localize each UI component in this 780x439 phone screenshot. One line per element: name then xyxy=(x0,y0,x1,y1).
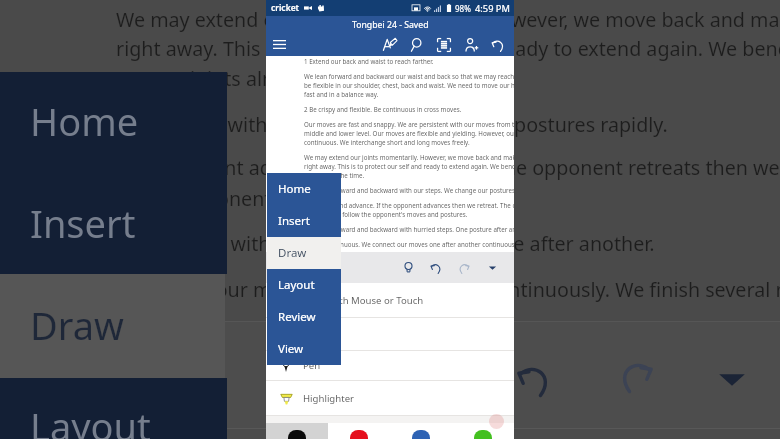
button[interactable]: Redo xyxy=(454,252,474,283)
staticText: We may extend our joints momentarily. Ho… xyxy=(116,6,780,33)
staticText: 1 Extend our back and waist to reach far… xyxy=(304,57,434,65)
staticText: cricket xyxy=(271,2,300,14)
staticText: advance. We follow the opponent's moves … xyxy=(0,185,483,212)
button[interactable]: Home xyxy=(267,173,341,205)
staticText: We lean forward and backward our waist a… xyxy=(304,72,514,80)
staticText: Our moves are fast and snappy. We are pe… xyxy=(304,120,514,128)
button[interactable]: Undo xyxy=(426,252,446,283)
staticText: Home xyxy=(278,181,311,197)
staticText: Draw xyxy=(278,245,307,261)
staticText: Insert xyxy=(278,213,310,229)
button[interactable]: View xyxy=(267,333,341,365)
staticText: 4:59 PM xyxy=(475,2,510,15)
staticText: We move forward and backward with our st… xyxy=(304,186,514,194)
button[interactable]: Share xyxy=(457,33,484,56)
staticText: We are continuous. We connect our moves … xyxy=(304,240,514,248)
staticText: We may extend our joints momentarily. Ho… xyxy=(304,153,514,161)
staticText: Home xyxy=(30,95,139,147)
staticText: 2 Be crispy and flexible. Be continuous … xyxy=(304,105,462,113)
staticText: We move forward and backward with our st… xyxy=(0,111,668,138)
staticText: right away. This is to protect our self … xyxy=(116,35,780,62)
button[interactable]: Search xyxy=(403,33,430,56)
button[interactable]: Green xyxy=(452,423,514,439)
staticText: Highlighter xyxy=(303,392,355,405)
staticText: Pen xyxy=(303,359,321,372)
staticText: Layout xyxy=(278,277,315,293)
button[interactable]: Pen xyxy=(266,351,514,380)
button[interactable]: Draw with Mouse or Touch xyxy=(266,283,514,317)
staticText: We retreat and advance. If the opponent … xyxy=(304,201,514,209)
button[interactable]: Red xyxy=(328,423,390,439)
staticText: joints almost all the time. xyxy=(190,65,423,92)
button[interactable]: Menu xyxy=(266,33,292,56)
button[interactable]: Layout view xyxy=(430,33,457,56)
button[interactable]: Insert xyxy=(267,205,341,237)
staticText: Layout xyxy=(30,400,151,439)
staticText: continuous. We interchange short and lon… xyxy=(304,138,470,146)
staticText: We are continuous. We connect our moves … xyxy=(0,276,780,303)
staticText: Draw xyxy=(30,299,124,351)
staticText: Draw with Mouse or Touch xyxy=(303,294,424,307)
staticText: Review xyxy=(278,309,316,325)
button[interactable]: More options xyxy=(482,252,502,283)
staticText: advance. We follow the opponent's moves … xyxy=(304,210,468,218)
staticText: View xyxy=(278,341,304,357)
staticText: We move forward and backward with hurrie… xyxy=(304,225,514,233)
staticText: right away. This is to protect our self … xyxy=(304,162,514,170)
button[interactable]: Eraser xyxy=(266,318,514,350)
staticText: Insert xyxy=(30,197,136,249)
button[interactable]: Review xyxy=(267,301,341,333)
staticText: fast and in a balance way. xyxy=(304,90,379,98)
staticText: be flexible in our shoulder, chest, back… xyxy=(304,81,514,89)
staticText: Tongbei 24 - Saved xyxy=(352,19,429,31)
button[interactable]: Draw xyxy=(267,237,341,269)
button[interactable]: Blue xyxy=(390,423,452,439)
button[interactable]: Undo xyxy=(484,33,511,56)
staticText: s almost all the time. xyxy=(304,171,365,179)
staticText: We move forward and backward with hurrie… xyxy=(0,230,655,257)
button[interactable]: Layout xyxy=(267,269,341,301)
button[interactable]: Ink xyxy=(376,33,403,56)
button[interactable]: Black xyxy=(266,423,328,439)
staticText: We retreat and advance. If the opponent … xyxy=(0,154,780,181)
staticText: middle and lower level. Our moves are fl… xyxy=(304,129,514,137)
staticText: 98% xyxy=(455,3,471,14)
button[interactable]: Highlighter xyxy=(266,381,514,415)
button[interactable]: Tell me xyxy=(398,252,418,283)
